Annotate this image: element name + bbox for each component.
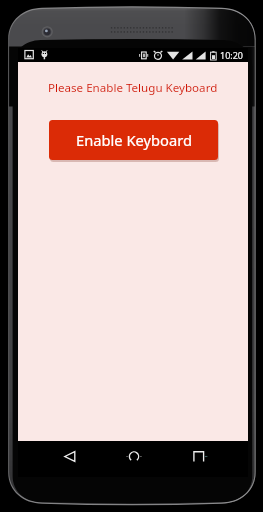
button[interactable]: Enable Keyboard [49,120,218,160]
staticText: 10:20 [220,49,244,61]
staticText: Enable Keyboard [76,130,192,150]
button[interactable]: Back [54,441,86,477]
button[interactable]: Home [117,441,150,477]
staticText: Please Enable Telugu Keyboard [48,80,218,96]
button[interactable]: Recents [184,441,216,477]
